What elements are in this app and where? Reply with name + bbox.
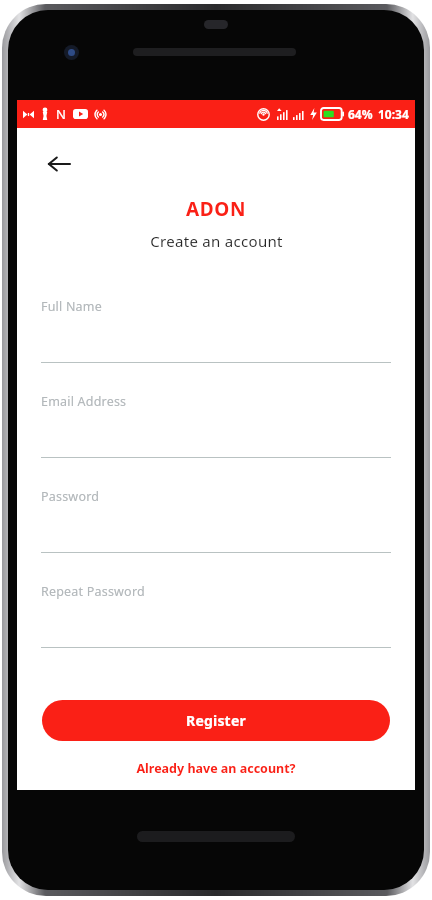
button[interactable]: Full Name <box>41 298 391 363</box>
button[interactable]: Register <box>42 700 390 741</box>
button[interactable]: Repeat Password <box>41 583 391 648</box>
staticText: Repeat Password <box>41 583 145 600</box>
staticText: N <box>56 105 66 123</box>
staticText: Full Name <box>41 298 102 315</box>
button[interactable]: Email Address <box>41 393 391 458</box>
button[interactable]: Password <box>41 488 391 553</box>
staticText: 64% <box>348 106 373 122</box>
staticText: ADON <box>186 196 246 222</box>
staticText: Create an account <box>150 231 283 251</box>
button[interactable]: Already have an account? <box>126 756 306 781</box>
staticText: Email Address <box>41 393 127 410</box>
staticText: Password <box>41 488 100 505</box>
button[interactable]: Back <box>37 142 81 186</box>
staticText: Register <box>186 711 246 730</box>
staticText: 10:34 <box>378 106 409 122</box>
staticText: Already have an account? <box>136 760 296 777</box>
